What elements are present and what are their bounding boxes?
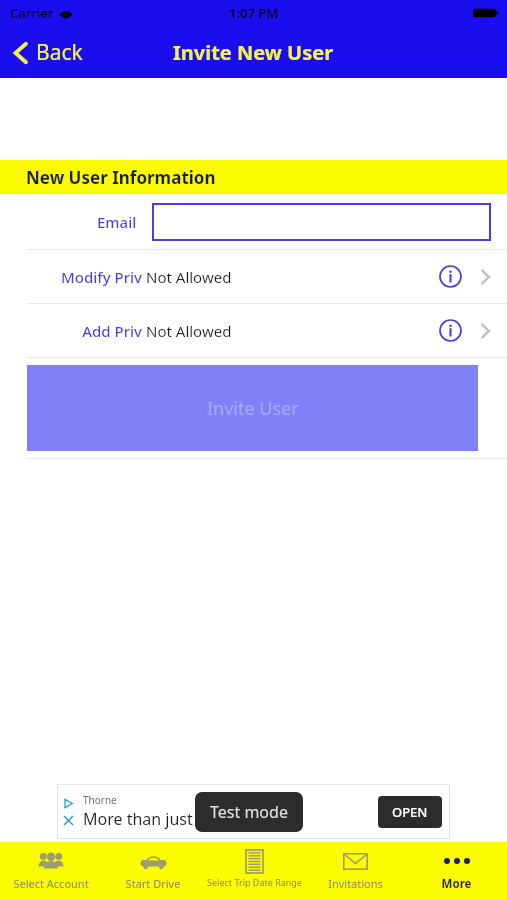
other: Info	[439, 319, 462, 342]
staticText: Invite New User	[173, 39, 334, 66]
staticText: Modify Priv	[0, 267, 142, 287]
staticText: Test mode	[210, 801, 288, 823]
staticText: OPEN	[392, 803, 428, 821]
button[interactable]: Invitations	[305, 842, 406, 900]
button[interactable]: Add Priv	[0, 304, 507, 357]
button[interactable]: Select Account	[0, 842, 102, 900]
staticText: Not Allowed	[146, 321, 232, 341]
staticText: Email	[97, 212, 137, 232]
staticText: Not Allowed	[146, 267, 232, 287]
staticText: Thorne	[83, 793, 117, 807]
button[interactable]: Modify Priv	[0, 250, 507, 303]
staticText: More	[406, 876, 507, 892]
staticText: 1:07 PM	[229, 4, 279, 22]
staticText: Start Drive	[102, 876, 204, 891]
staticText: Add Priv	[0, 321, 142, 341]
staticText: Invite User	[207, 396, 299, 421]
button[interactable]: Select Trip Date Range	[204, 842, 305, 900]
button[interactable]: OPEN	[378, 796, 442, 828]
staticText: Back	[36, 38, 83, 67]
staticText: Carrier	[10, 4, 54, 22]
button[interactable]: Start Drive	[102, 842, 204, 900]
staticText: Invitations	[305, 876, 406, 891]
staticText: Select Trip Date Range	[204, 876, 305, 888]
button[interactable]: Back	[0, 30, 97, 75]
button[interactable]	[152, 203, 491, 241]
staticText: More than just omega	[83, 808, 250, 830]
staticText: Select Account	[0, 876, 102, 891]
button[interactable]: Invite User	[27, 365, 478, 451]
staticText: New User Information	[26, 166, 216, 189]
other: Info	[439, 265, 462, 288]
button[interactable]: More	[406, 842, 507, 900]
button[interactable]: Thorne	[57, 784, 450, 839]
